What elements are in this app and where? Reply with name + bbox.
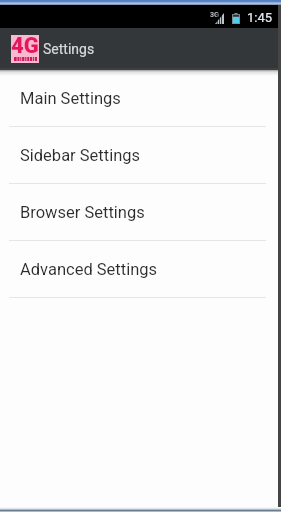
button[interactable]: Sidebar Settings: [0, 127, 278, 183]
button[interactable]: Advanced Settings: [0, 241, 278, 297]
button[interactable]: 4G Browser app icon: [0, 28, 109, 70]
staticText: Browser Settings: [20, 203, 145, 222]
staticText: Settings: [43, 41, 95, 57]
button[interactable]: Main Settings: [0, 70, 278, 126]
other: 4G Browser app icon: [11, 35, 39, 63]
staticText: 1:45: [247, 10, 273, 25]
staticText: Sidebar Settings: [20, 146, 141, 165]
staticText: 3G: [210, 11, 219, 19]
staticText: Advanced Settings: [20, 260, 158, 279]
staticText: 4G: [11, 33, 39, 59]
staticText: Main Settings: [20, 89, 121, 108]
button[interactable]: Browser Settings: [0, 184, 278, 240]
